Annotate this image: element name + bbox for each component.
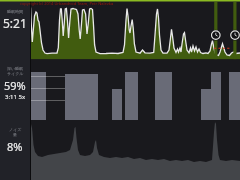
staticText: 深い睡眠 (7, 66, 24, 71)
staticText: 5:21 (3, 15, 27, 31)
staticText: 8% (7, 139, 23, 154)
staticText: サイクル (7, 71, 24, 76)
staticText: ノイズ (9, 127, 22, 132)
staticText: copyright (c) 2014 Urbandroid Team, Petr… (20, 1, 114, 6)
staticText: 睡眠時間 (7, 9, 23, 14)
staticText: 3:11 5x (5, 93, 26, 101)
staticText: 量 (13, 132, 17, 137)
staticText: 59% (4, 78, 26, 93)
